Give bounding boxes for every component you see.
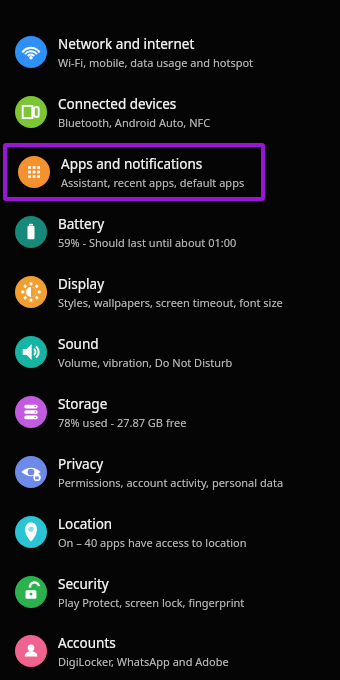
staticText: Volume, vibration, Do Not Disturb — [58, 355, 233, 370]
staticText: Assistant, recent apps, default apps — [61, 175, 245, 190]
staticText: Connected devices — [58, 95, 177, 113]
button[interactable]: Connected devices — [0, 82, 340, 142]
button[interactable]: Sound — [0, 322, 340, 382]
staticText: Location — [58, 515, 113, 533]
button[interactable]: Storage — [0, 382, 340, 442]
staticText: Battery — [58, 215, 105, 233]
staticText: Wi-Fi, mobile, data usage and hotspot — [58, 55, 254, 70]
staticText: Display — [58, 275, 105, 293]
staticText: Accounts — [58, 634, 116, 652]
staticText: Play Protect, screen lock, fingerprint — [58, 595, 245, 610]
staticText: Storage — [58, 395, 108, 413]
staticText: Privacy — [58, 455, 104, 473]
staticText: Permissions, account activity, personal … — [58, 475, 284, 490]
staticText: DigiLocker, WhatsApp and Adobe — [58, 654, 229, 669]
button[interactable]: Battery — [0, 202, 340, 262]
button[interactable]: Privacy — [0, 442, 340, 502]
button[interactable]: Security — [0, 562, 340, 622]
button[interactable]: Display — [0, 262, 340, 322]
staticText: Security — [58, 575, 109, 593]
staticText: Sound — [58, 335, 99, 353]
button[interactable]: Apps and notifications — [7, 147, 261, 197]
staticText: 78% used - 27.87 GB free — [58, 415, 187, 430]
staticText: Bluetooth, Android Auto, NFC — [58, 115, 211, 130]
staticText: Styles, wallpapers, screen timeout, font… — [58, 295, 283, 310]
staticText: 59% - Should last until about 01:00 — [58, 235, 237, 250]
staticText: Network and internet — [58, 35, 195, 53]
staticText: On – 40 apps have access to location — [58, 535, 247, 550]
staticText: Apps and notifications — [61, 155, 203, 173]
button[interactable]: Accounts — [0, 622, 340, 680]
button[interactable]: Network and internet — [0, 22, 340, 82]
button[interactable]: Location — [0, 502, 340, 562]
